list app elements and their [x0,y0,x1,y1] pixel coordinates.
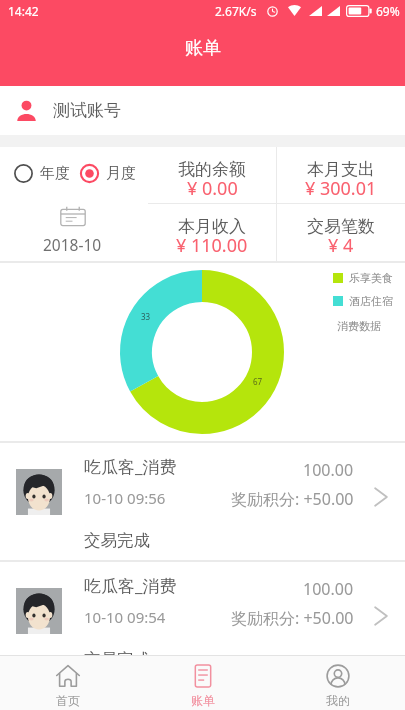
staticText: 消费数据 [337,319,381,333]
staticText: 10-10 09:56 [84,488,166,508]
button[interactable]: 年度 [14,162,70,185]
staticText: 月度 [106,164,136,183]
staticText: 交易笔数 [307,216,375,237]
button[interactable]: 本月收入 [148,204,276,261]
staticText: 69% [376,3,400,19]
button[interactable]: 我的 [270,656,405,710]
staticText: 67 [253,376,263,387]
staticText: 首页 [56,693,80,708]
staticText: 2.67K/s [215,3,257,19]
other: 查看详情 [374,487,388,507]
button[interactable]: 2018-10 [0,206,145,255]
staticText: 100.00 [303,578,354,600]
button[interactable]: 吃瓜客_消费 [0,562,405,679]
staticText: 33 [141,311,151,322]
staticText: 奖励积分: +50.00 [231,607,354,629]
button[interactable]: 吃瓜客_消费 [0,443,405,560]
staticText: ¥ 300.01 [305,176,377,201]
staticText: 本月支出 [307,159,375,180]
staticText: 10-10 09:54 [84,607,166,627]
button[interactable]: 我的余额 [148,147,276,203]
staticText: 酒店住宿 [349,294,393,308]
other: 查看详情 [374,606,388,626]
staticText: 本月收入 [178,216,246,237]
staticText: 乐享美食 [349,271,393,285]
staticText: 2018-10 [43,234,102,255]
staticText: 奖励积分: +50.00 [231,488,354,510]
other: 闹钟 [267,6,278,17]
staticText: 吃瓜客_消费 [84,455,177,478]
staticText: 14:42 [8,3,39,19]
button[interactable]: 测试账号 [0,86,405,135]
staticText: 100.00 [303,459,354,481]
staticText: 账单 [191,693,215,708]
staticText: 交易完成 [84,530,150,551]
staticText: ¥ 0.00 [187,176,238,201]
button[interactable]: 月度 [80,162,136,185]
staticText: 我的 [326,693,350,708]
staticText: 吃瓜客_消费 [84,574,177,597]
button[interactable]: 首页 [0,656,135,710]
staticText: 我的余额 [178,159,246,180]
staticText: 年度 [40,164,70,183]
button[interactable]: 账单 [135,656,270,710]
button[interactable]: 交易笔数 [277,204,405,261]
staticText: 账单 [185,37,221,60]
button[interactable]: 本月支出 [277,147,405,203]
staticText: ¥ 110.00 [176,233,248,258]
staticText: 测试账号 [53,100,121,121]
staticText: 交易完成 [84,649,150,670]
staticText: ¥ 4 [328,233,354,258]
